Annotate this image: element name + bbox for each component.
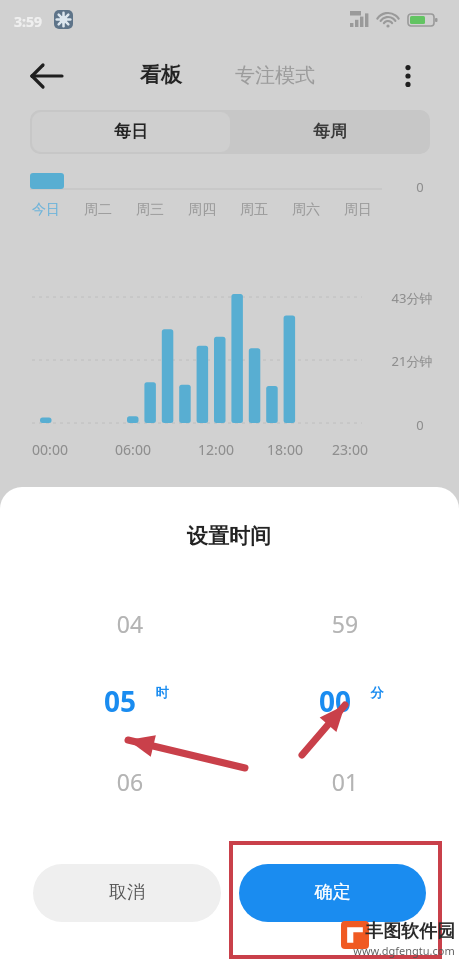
staticText: 每日 <box>32 121 230 148</box>
staticText: 18:00 <box>250 440 320 464</box>
staticText: 专注模式 <box>215 63 335 93</box>
button[interactable]: 取消 <box>33 864 221 922</box>
button[interactable]: 周日 <box>332 198 384 224</box>
staticText: 0 <box>400 416 440 439</box>
button[interactable]: 每日 <box>32 112 230 152</box>
button[interactable]: 周六 <box>280 198 332 224</box>
staticText: 每周 <box>232 121 428 148</box>
staticText: 06 <box>40 766 220 799</box>
staticText: 丰图软件园 <box>355 920 459 948</box>
staticText: 04 <box>40 608 220 641</box>
staticText: 01 <box>255 766 435 799</box>
staticText: www.dgfengtu.com <box>339 943 459 962</box>
staticText: 0 <box>400 178 440 201</box>
button[interactable]: 周二 <box>72 198 124 224</box>
button[interactable]: 今日 <box>20 198 72 224</box>
staticText: 00 <box>245 682 425 720</box>
staticText: 周二 <box>72 201 124 225</box>
staticText: 设置时间 <box>99 523 359 554</box>
button[interactable]: More options <box>385 55 431 97</box>
button[interactable]: Back <box>24 55 74 97</box>
staticText: 周三 <box>124 201 176 225</box>
staticText: 周四 <box>176 201 228 225</box>
button[interactable]: 59 <box>265 590 445 810</box>
staticText: 21分钟 <box>377 352 447 375</box>
staticText: 59 <box>255 608 435 641</box>
staticText: 看板 <box>120 62 202 93</box>
staticText: 12:00 <box>181 440 251 464</box>
button[interactable]: 周五 <box>228 198 280 224</box>
staticText: 06:00 <box>98 440 168 464</box>
staticText: 今日 <box>20 201 72 225</box>
staticText: 分 <box>357 684 397 707</box>
staticText: 00:00 <box>15 440 85 464</box>
staticText: 43分钟 <box>377 289 447 312</box>
button[interactable]: 确定 <box>239 864 426 922</box>
staticText: 周五 <box>228 201 280 225</box>
button[interactable]: 专注模式 <box>215 57 335 97</box>
button[interactable]: 看板 <box>120 56 202 96</box>
button[interactable]: 04 <box>40 590 220 810</box>
button[interactable]: 周四 <box>176 198 228 224</box>
staticText: 确定 <box>239 881 426 909</box>
staticText: 取消 <box>33 881 221 909</box>
staticText: 周六 <box>280 201 332 225</box>
staticText: 23:00 <box>315 440 385 464</box>
button[interactable]: 周三 <box>124 198 176 224</box>
button[interactable]: 每周 <box>232 112 428 152</box>
staticText: 时 <box>142 684 182 707</box>
staticText: 3:59 <box>14 12 94 36</box>
staticText: 周日 <box>332 201 384 225</box>
staticText: 05 <box>30 682 210 720</box>
